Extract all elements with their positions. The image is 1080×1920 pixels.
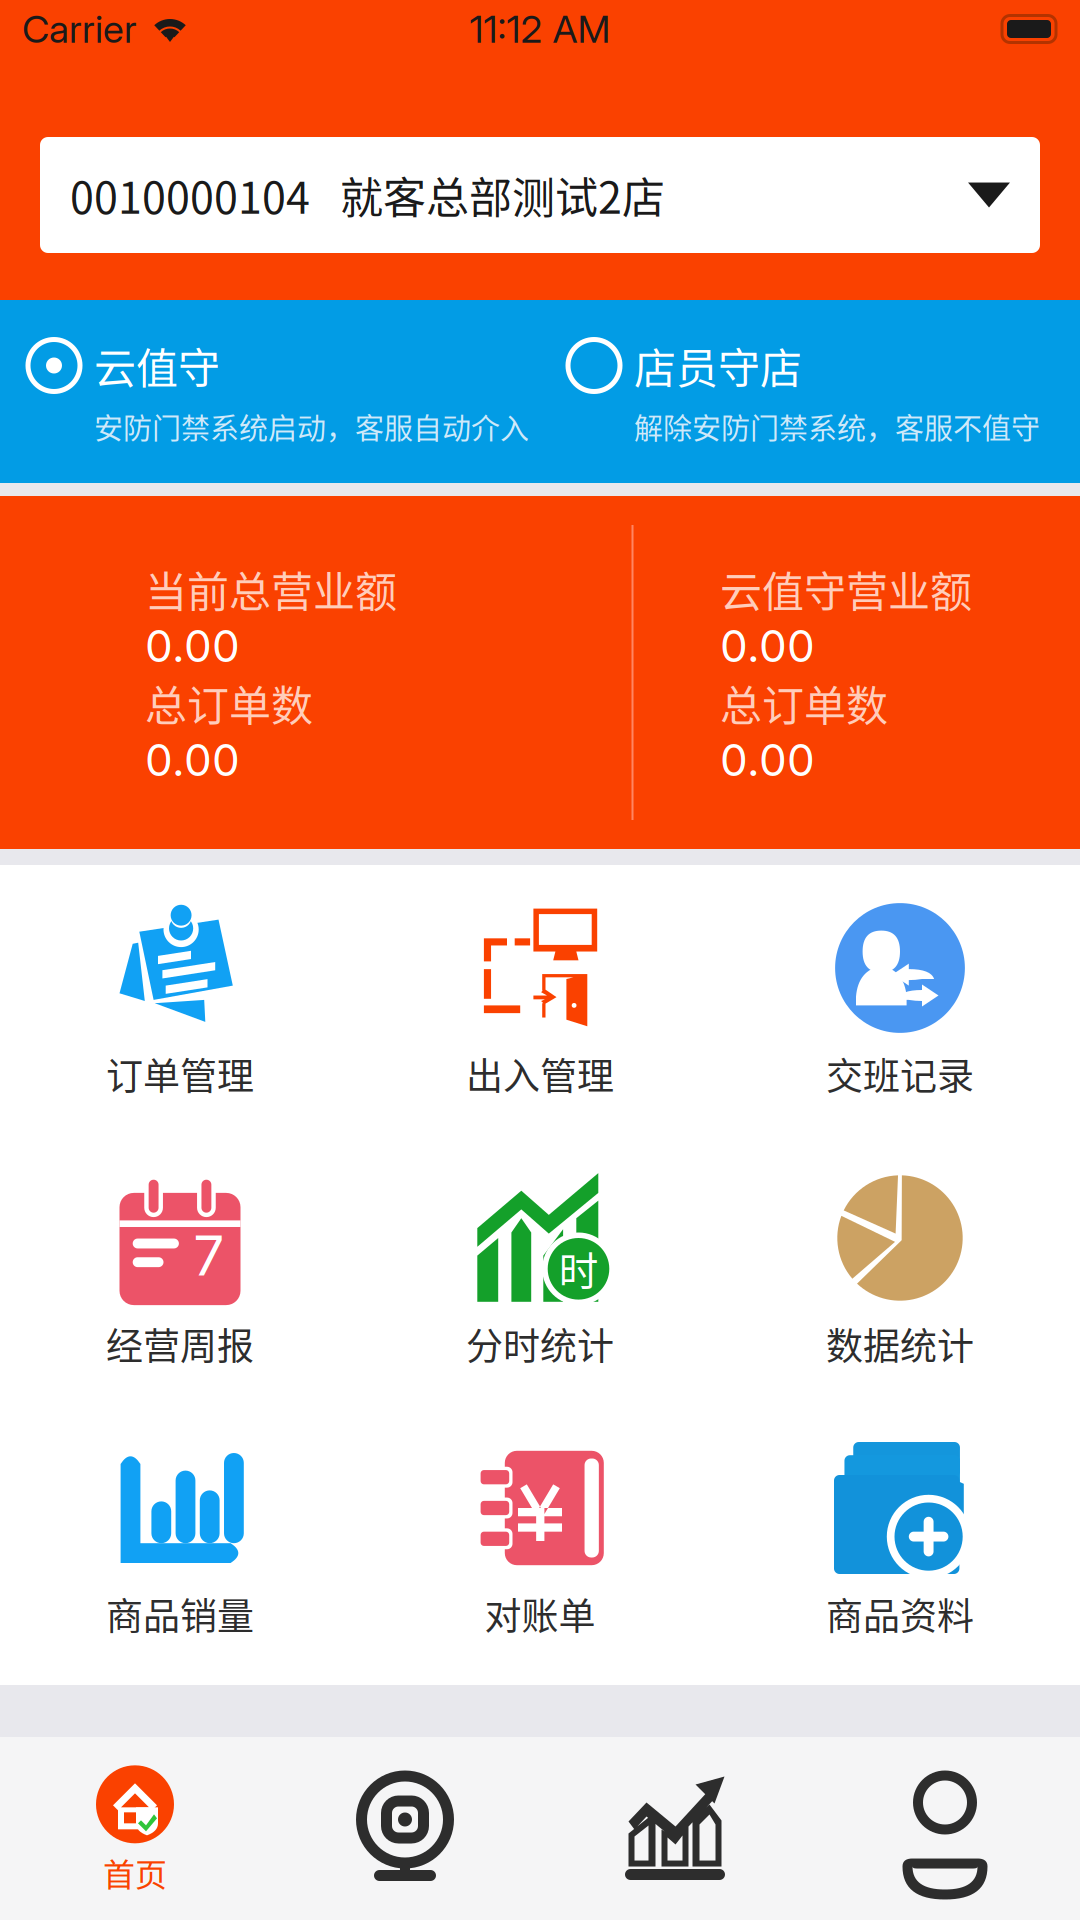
staticText: 经营周报 [106,1317,254,1371]
staticText: 云值守营业额 [720,558,972,619]
staticText: 总订单数 [145,672,313,733]
button[interactable]: 商品销量 [0,1405,360,1675]
staticText: 0.00 [720,733,815,786]
button[interactable]: 商品资料 [720,1405,1080,1675]
staticText: 分时统计 [466,1317,614,1371]
staticText: 7 [192,1224,220,1284]
staticText: 解除安防门禁系统，客服不值守 [634,406,1040,448]
button[interactable]: 云值守 [28,335,568,448]
staticText: 交班记录 [826,1047,974,1101]
staticText: 数据统计 [826,1317,974,1371]
staticText: Carrier [22,6,137,52]
staticText: 商品资料 [826,1587,974,1641]
staticText: 安防门禁系统启动，客服自动介入 [94,406,529,448]
staticText: 0.00 [145,733,240,786]
button[interactable]: Monitor [270,1743,540,1913]
staticText: 云值守 [94,335,220,396]
staticText: 出入管理 [466,1047,614,1101]
button[interactable]: 订单管理 [0,865,360,1135]
button[interactable]: 交班记录 [720,865,1080,1135]
button[interactable]: 出入管理 [360,865,720,1135]
staticText: 11:12 AM [469,6,610,52]
staticText: 当前总营业额 [145,558,397,619]
button[interactable]: 对账单 [360,1405,720,1675]
staticText: 0.00 [145,619,240,672]
staticText: 总订单数 [720,672,888,733]
button[interactable]: Statistics [540,1743,810,1913]
staticText: 0.00 [720,619,815,672]
staticText: 订单管理 [106,1047,254,1101]
button[interactable]: 时 [360,1135,720,1405]
button[interactable]: 7 [0,1135,360,1405]
staticText: 对账单 [484,1587,595,1641]
button[interactable]: Profile [810,1743,1080,1913]
button[interactable]: 0010000104 就客总部测试2店 [40,137,1040,253]
staticText: 0010000104 就客总部测试2店 [70,164,665,226]
button[interactable]: 店员守店 [568,335,1080,448]
staticText: 店员守店 [634,335,802,396]
staticText: 时 [557,1240,593,1292]
button[interactable]: 数据统计 [720,1135,1080,1405]
button[interactable]: 首页 [0,1743,270,1913]
staticText: 商品销量 [106,1587,254,1641]
staticText: 首页 [103,1849,167,1896]
